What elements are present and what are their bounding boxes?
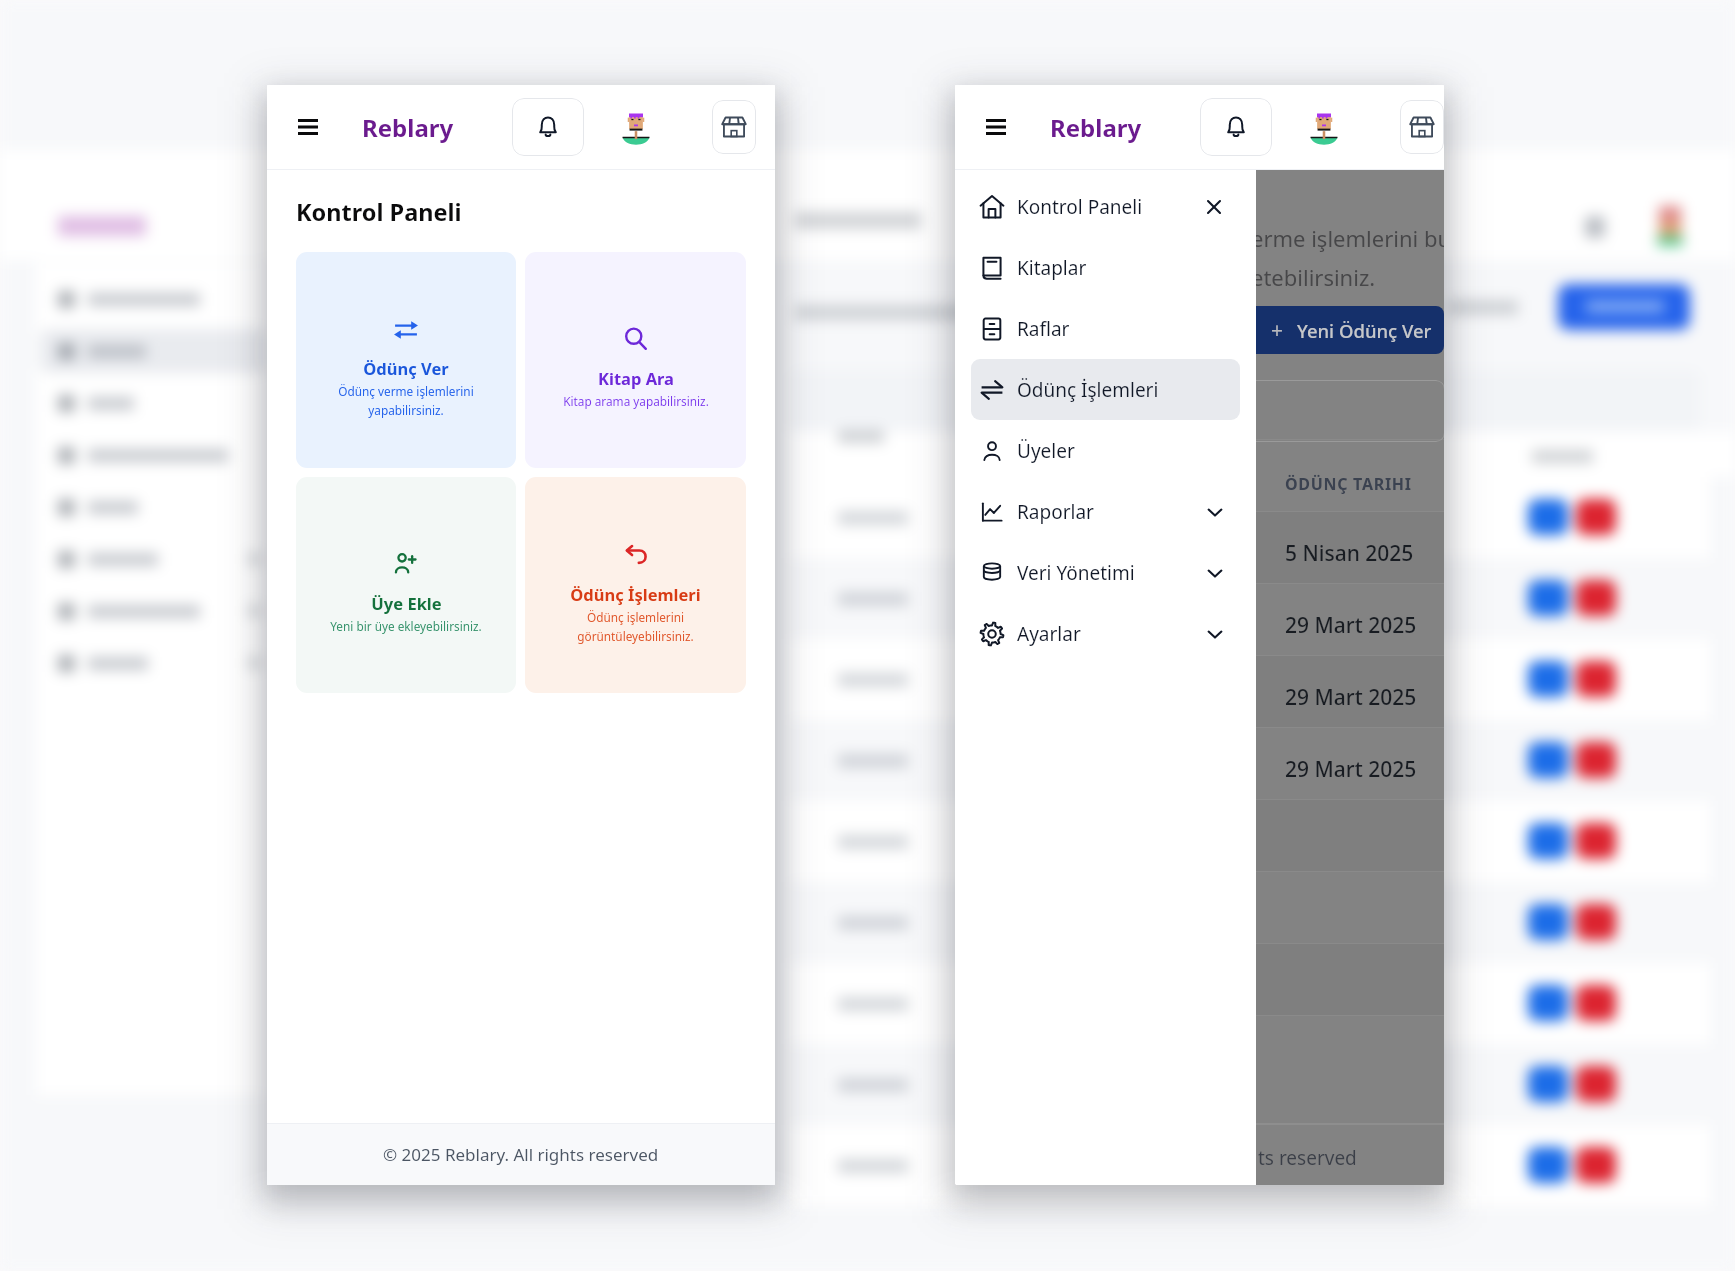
staticText: Ödünç verme işlemlerini yapabilirsiniz. [338, 383, 474, 418]
button[interactable]: Üyeler [971, 420, 1240, 481]
button[interactable]: Notifications [512, 98, 584, 156]
staticText: Veri Yönetimi [1017, 560, 1135, 586]
staticText: Kitaplar [1017, 255, 1087, 281]
staticText: © 2025 Reblary. All rights reserved [383, 1143, 659, 1166]
button[interactable]: Ayarlar [971, 603, 1240, 664]
staticText: Ödünç İşlemleri [1017, 377, 1159, 403]
staticText: Raflar [1017, 316, 1070, 342]
staticText: Ödünç İşlemleri [570, 583, 701, 605]
button[interactable]: Expand Raporlar [1204, 501, 1226, 523]
button[interactable]: Store [712, 100, 756, 154]
staticText: Reblary [1050, 111, 1142, 144]
staticText: Kitap Ara [598, 367, 674, 389]
button[interactable]: Expand Ayarlar [1204, 623, 1226, 645]
staticText: Kitap arama yapabilirsiniz. [563, 393, 709, 409]
staticText: 29 Mart 2025 [1285, 611, 1417, 640]
button[interactable]: Üye Ekle [296, 477, 516, 693]
staticText: Yeni bir üye ekleyebilirsiniz. [330, 618, 482, 634]
button[interactable]: + [1204, 306, 1444, 354]
staticText: Reblary [362, 111, 454, 144]
button[interactable]: Open menu [985, 110, 1006, 144]
button[interactable]: Expand Veri Yönetimi [1204, 562, 1226, 584]
staticText: erme işlemlerini bu etebilirsiniz. [1251, 223, 1444, 293]
staticText: Yeni Ödünç Ver [1297, 318, 1432, 343]
button[interactable]: Ödünç İşlemleri [971, 359, 1240, 420]
button[interactable]: Close menu [1202, 195, 1226, 219]
button[interactable]: Kitap Ara [525, 252, 746, 468]
button[interactable]: Veri Yönetimi [971, 542, 1240, 603]
staticText: Ayarlar [1017, 621, 1081, 647]
staticText: ÖDÜNÇ TARIHI [1285, 473, 1412, 495]
staticText: Raporlar [1017, 499, 1094, 525]
button[interactable]: Notifications [1200, 98, 1272, 156]
button[interactable]: Raflar [971, 298, 1240, 359]
button[interactable]: Kitaplar [971, 237, 1240, 298]
staticText: 29 Mart 2025 [1285, 755, 1417, 784]
button[interactable]: Kontrol Paneli [971, 176, 1240, 237]
staticText: 29 Mart 2025 [1285, 683, 1417, 712]
staticText: Ödünç işlemlerini görüntüleyebilirsiniz. [577, 609, 694, 644]
button[interactable]: Profile [618, 104, 654, 150]
staticText: ts reserved [1258, 1145, 1357, 1171]
staticText: 5 Nisan 2025 [1285, 539, 1414, 568]
staticText: Kontrol Paneli [1017, 194, 1143, 220]
button[interactable]: Store [1400, 100, 1444, 154]
button[interactable]: Raporlar [971, 481, 1240, 542]
button[interactable]: Ödünç Ver [296, 252, 516, 468]
button[interactable]: Profile [1306, 104, 1342, 150]
button[interactable]: Ödünç İşlemleri [525, 477, 746, 693]
button[interactable]: Open menu [297, 110, 318, 144]
staticText: + [1271, 316, 1284, 345]
staticText: Ödünç Ver [363, 357, 449, 379]
staticText: Kontrol Paneli [296, 196, 462, 228]
staticText: Üye Ekle [371, 592, 442, 614]
staticText: Üyeler [1017, 438, 1075, 464]
